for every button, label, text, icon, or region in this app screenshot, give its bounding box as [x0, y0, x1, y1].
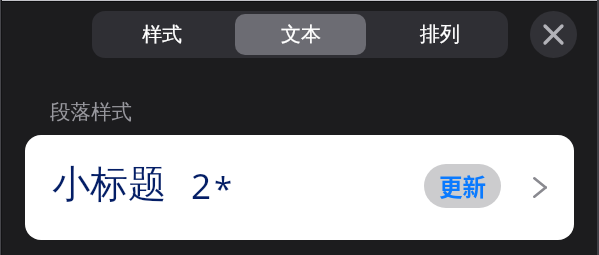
staticText: 段落样式	[50, 99, 132, 125]
button[interactable]: 排列	[374, 14, 505, 55]
staticText: 更新	[439, 169, 486, 203]
button[interactable]: More paragraph styles	[518, 154, 562, 220]
staticText: *	[214, 166, 233, 211]
staticText: 样式	[142, 22, 182, 47]
staticText: 排列	[420, 22, 460, 47]
staticText: 2	[191, 162, 212, 210]
button[interactable]: 小标题	[25, 135, 574, 240]
button[interactable]: Close	[530, 11, 577, 58]
button[interactable]: 文本	[235, 14, 366, 55]
button[interactable]: 样式	[97, 14, 227, 55]
staticText: 小标题	[52, 160, 166, 208]
staticText: 文本	[281, 22, 321, 47]
button[interactable]: 更新	[424, 164, 501, 208]
